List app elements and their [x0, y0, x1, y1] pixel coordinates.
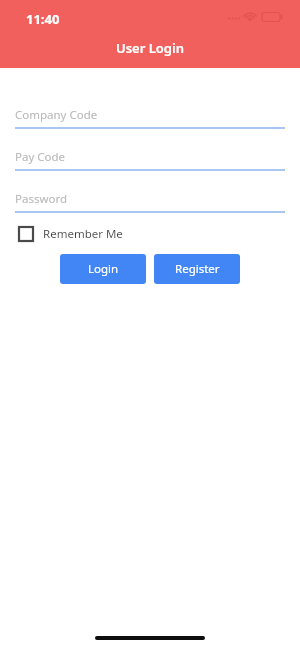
staticText: Pay Code	[15, 149, 66, 165]
staticText: Password	[15, 191, 68, 207]
staticText: 11:40	[26, 10, 60, 28]
staticText: Register	[175, 261, 220, 277]
staticText: Login	[88, 261, 119, 277]
staticText: Company Code	[15, 107, 98, 123]
button[interactable]: Remember Me	[15, 223, 123, 245]
button[interactable]: Password	[15, 188, 285, 213]
button[interactable]: Pay Code	[15, 146, 285, 171]
staticText: User Login	[116, 39, 184, 57]
button[interactable]: Company Code	[15, 104, 285, 129]
button[interactable]: Login	[60, 254, 146, 284]
button[interactable]: Register	[154, 254, 240, 284]
staticText: Remember Me	[43, 226, 123, 242]
